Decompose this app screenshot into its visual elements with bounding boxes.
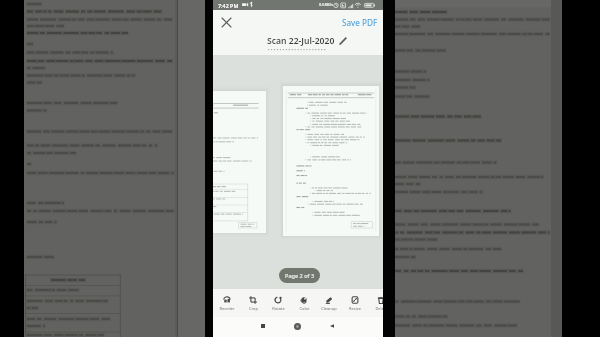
button[interactable]: Resize	[342, 289, 368, 318]
staticText: Resize	[349, 306, 361, 311]
staticText: Save PDF	[342, 17, 378, 28]
button[interactable]: Save PDF	[338, 15, 383, 30]
staticText: Reorder	[219, 306, 235, 311]
button[interactable]: Page 2 of 3	[279, 268, 320, 283]
button[interactable]: Scan 22-Jul-2020	[267, 35, 347, 47]
button[interactable]: Delete	[368, 289, 383, 318]
button[interactable]: Recents	[255, 318, 271, 334]
button[interactable]: Close	[216, 12, 236, 32]
button[interactable]: Rotate	[265, 289, 291, 318]
button[interactable]: Color	[291, 289, 317, 318]
button[interactable]: Cleanup	[316, 289, 342, 318]
button[interactable]: Home	[289, 318, 305, 334]
button[interactable]: Back	[324, 318, 340, 334]
staticText: 7:42 PM	[218, 2, 239, 9]
staticText: Crop	[249, 306, 258, 311]
staticText: Page 2 of 3	[285, 272, 315, 280]
staticText: 0.6KB/s	[319, 2, 334, 7]
staticText: Color	[299, 306, 310, 311]
staticText: Scan 22-Jul-2020	[267, 35, 335, 47]
staticText: Cleanup	[321, 306, 337, 311]
button[interactable]: Reorder	[214, 289, 240, 318]
staticText: Rotate	[272, 306, 285, 311]
button[interactable]: Crop	[240, 289, 266, 318]
staticText: Delete	[375, 306, 383, 311]
